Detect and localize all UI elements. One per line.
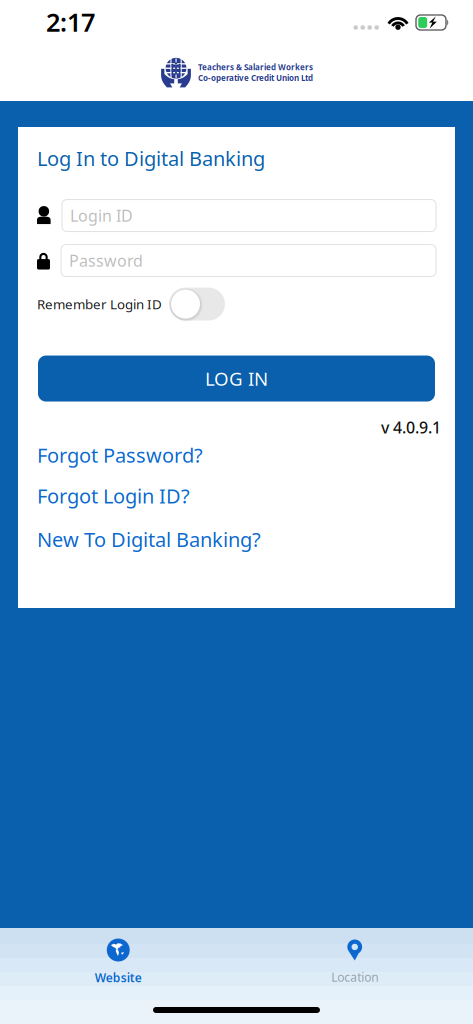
staticText: Website — [95, 969, 142, 985]
staticText: v 4.0.9.1 — [381, 417, 441, 438]
staticText: LOG IN — [205, 366, 268, 391]
button[interactable]: Login ID — [62, 200, 436, 232]
button[interactable]: Website — [0, 938, 236, 985]
button[interactable]: Location — [236, 939, 473, 985]
button[interactable]: New To Digital Banking? — [18, 526, 455, 552]
staticText: Teachers & Salaried Workers — [198, 62, 313, 72]
staticText: Forgot Password? — [37, 442, 203, 468]
staticText: New To Digital Banking? — [37, 526, 261, 552]
staticText: Co-operative Credit Union Ltd — [198, 72, 313, 83]
staticText: Log In to Digital Banking — [37, 145, 265, 172]
staticText: Password — [69, 250, 143, 271]
button[interactable]: Forgot Password? — [18, 442, 455, 468]
staticText: 2:17 — [46, 5, 95, 39]
button[interactable]: LOG IN — [38, 356, 435, 402]
button[interactable]: Remember Login ID — [169, 288, 225, 321]
staticText: Remember Login ID — [37, 295, 162, 313]
staticText: Forgot Login ID? — [37, 482, 190, 509]
button[interactable]: Password — [61, 245, 436, 277]
staticText: Login ID — [70, 205, 133, 226]
button[interactable]: Forgot Login ID? — [18, 482, 455, 509]
staticText: Location — [331, 969, 378, 985]
